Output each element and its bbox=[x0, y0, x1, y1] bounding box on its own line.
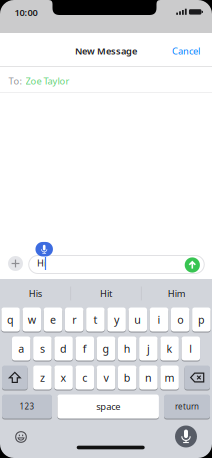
button[interactable]: v bbox=[97, 365, 115, 389]
button[interactable] bbox=[185, 257, 200, 273]
staticText: h bbox=[124, 341, 131, 356]
staticText: space bbox=[96, 400, 120, 413]
staticText: c bbox=[82, 370, 87, 385]
staticText: z bbox=[40, 370, 45, 385]
button[interactable]: n bbox=[139, 365, 158, 389]
button[interactable] bbox=[2, 365, 28, 389]
staticText: s bbox=[40, 341, 45, 356]
button[interactable]: j bbox=[139, 336, 158, 360]
button[interactable]: x bbox=[54, 365, 73, 389]
staticText: j bbox=[147, 341, 150, 356]
staticText: 123 bbox=[19, 401, 34, 412]
button[interactable]: q bbox=[1, 307, 20, 331]
button[interactable]: k bbox=[160, 336, 179, 360]
button[interactable]: space bbox=[57, 394, 159, 418]
staticText: His bbox=[29, 287, 42, 300]
staticText: e bbox=[50, 312, 56, 327]
staticText: m bbox=[165, 370, 175, 385]
button[interactable]: h bbox=[118, 336, 136, 360]
button[interactable]: o bbox=[171, 307, 189, 331]
staticText: d bbox=[60, 341, 67, 356]
staticText: i bbox=[157, 312, 160, 327]
button[interactable]: g bbox=[97, 336, 115, 360]
button[interactable]: return bbox=[164, 394, 210, 418]
button[interactable] bbox=[8, 256, 23, 271]
staticText: b bbox=[124, 370, 131, 385]
button[interactable]: Him bbox=[142, 284, 211, 303]
button[interactable]: To: bbox=[0, 68, 212, 93]
staticText: 10:00 bbox=[14, 6, 37, 19]
button[interactable] bbox=[184, 365, 210, 389]
staticText: Him bbox=[168, 287, 186, 300]
staticText: o bbox=[177, 312, 183, 327]
button[interactable]: y bbox=[107, 307, 126, 331]
button[interactable]: s bbox=[33, 336, 52, 360]
button[interactable]: Hit bbox=[71, 284, 140, 303]
button[interactable]: r bbox=[65, 307, 83, 331]
staticText: p bbox=[198, 312, 205, 327]
staticText: return bbox=[175, 401, 199, 412]
staticText: Zoe Taylor bbox=[25, 75, 69, 87]
staticText: y bbox=[114, 312, 119, 327]
staticText: To: bbox=[8, 75, 22, 87]
button[interactable] bbox=[175, 425, 197, 447]
staticText: r bbox=[72, 312, 76, 327]
button[interactable]: c bbox=[75, 365, 94, 389]
button[interactable]: Cancel bbox=[169, 42, 203, 60]
staticText: Cancel bbox=[172, 45, 200, 57]
staticText: w bbox=[28, 312, 36, 327]
button[interactable]: f bbox=[75, 336, 94, 360]
staticText: v bbox=[103, 370, 108, 385]
button[interactable]: Hi bbox=[29, 255, 204, 273]
button[interactable]: i bbox=[150, 307, 168, 331]
staticText: New Message bbox=[75, 45, 137, 57]
button[interactable]: p bbox=[192, 307, 211, 331]
staticText: f bbox=[83, 341, 87, 356]
button[interactable]: His bbox=[1, 284, 70, 303]
button[interactable] bbox=[16, 432, 26, 442]
button[interactable]: w bbox=[23, 307, 41, 331]
button[interactable]: u bbox=[128, 307, 147, 331]
button[interactable]: t bbox=[86, 307, 105, 331]
staticText: l bbox=[189, 341, 192, 356]
button[interactable]: a bbox=[12, 336, 30, 360]
button[interactable]: 123 bbox=[2, 394, 52, 418]
staticText: Hit bbox=[100, 287, 112, 300]
staticText: t bbox=[93, 312, 97, 327]
button[interactable]: m bbox=[160, 365, 179, 389]
button[interactable]: b bbox=[118, 365, 136, 389]
staticText: a bbox=[18, 341, 24, 356]
button[interactable]: d bbox=[54, 336, 73, 360]
button[interactable]: l bbox=[181, 336, 200, 360]
button[interactable]: e bbox=[44, 307, 62, 331]
button[interactable]: z bbox=[33, 365, 52, 389]
staticText: Hi bbox=[37, 257, 46, 269]
staticText: u bbox=[134, 312, 141, 327]
staticText: n bbox=[145, 370, 152, 385]
staticText: g bbox=[102, 341, 109, 356]
staticText: k bbox=[167, 341, 173, 356]
staticText: x bbox=[61, 370, 67, 385]
staticText: q bbox=[7, 312, 14, 327]
